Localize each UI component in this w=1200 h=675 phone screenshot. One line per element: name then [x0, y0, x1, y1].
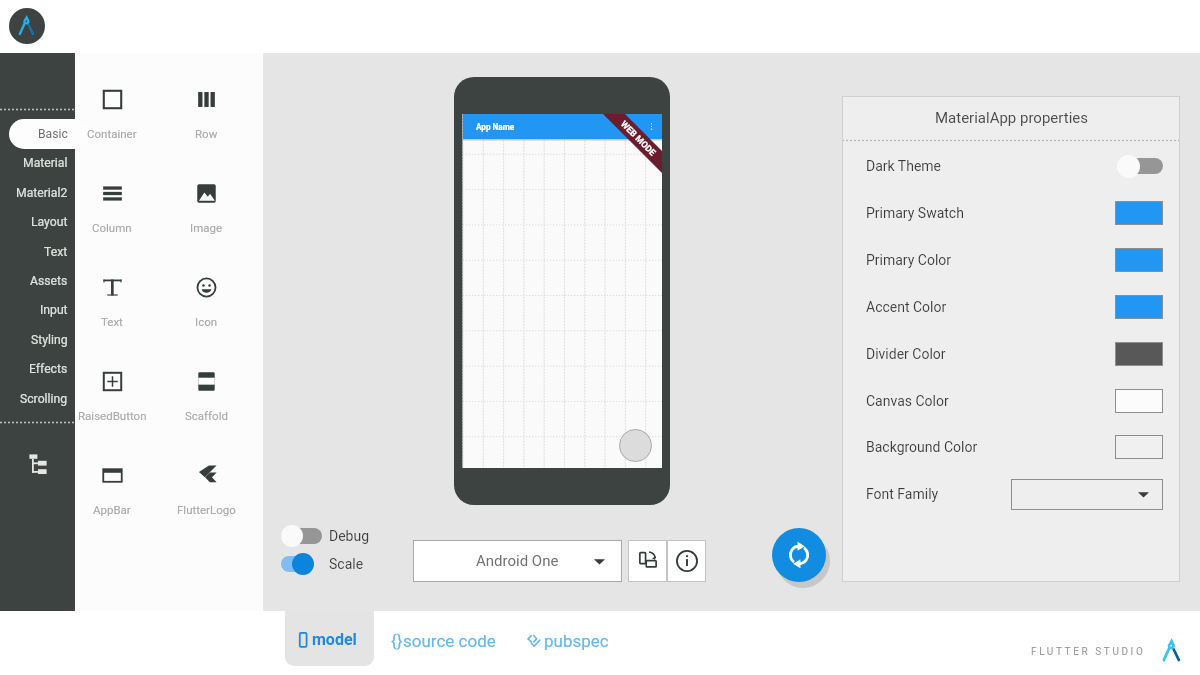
button[interactable]: pubspec	[527, 631, 609, 651]
button[interactable]	[9, 119, 89, 149]
button[interactable]: RaisedButton	[66, 357, 158, 419]
button[interactable]: Basic	[0, 121, 75, 147]
button[interactable]: {}	[391, 631, 496, 651]
staticText: Divider Color	[866, 346, 946, 362]
staticText: Image	[190, 221, 223, 234]
staticText: Scrolling	[20, 392, 68, 406]
staticText: Input	[40, 303, 68, 317]
staticText: FlutterLogo	[177, 503, 236, 516]
staticText: Text	[101, 315, 123, 328]
staticText: Primary Swatch	[866, 205, 964, 221]
button[interactable]: Dark Theme	[866, 144, 1163, 188]
button[interactable]: Background Color	[866, 425, 1163, 469]
staticText: Effects	[29, 362, 68, 376]
staticText: Row	[195, 127, 218, 140]
staticText: Debug	[329, 528, 370, 544]
staticText: Basic	[38, 127, 68, 141]
staticText: WEB MODE	[619, 119, 658, 158]
button[interactable]: Refresh preview	[772, 528, 826, 582]
staticText: Styling	[31, 333, 68, 347]
button[interactable]: Column	[66, 169, 158, 231]
staticText: Android One	[476, 552, 559, 570]
staticText: FLUTTER STUDIO	[1031, 646, 1146, 658]
staticText: Scaffold	[185, 409, 228, 422]
button[interactable]: Image	[160, 169, 252, 231]
staticText: Material	[23, 156, 68, 170]
button[interactable]: Widget tree	[20, 446, 55, 481]
staticText: pubspec	[544, 631, 609, 651]
button[interactable]: FlutterLogo	[160, 451, 252, 513]
button[interactable]: Rotate device	[628, 540, 667, 582]
staticText: Material2	[16, 186, 68, 200]
button[interactable]: Assets	[0, 268, 75, 294]
staticText: Accent Color	[866, 299, 947, 315]
staticText: Background Color	[866, 439, 978, 455]
staticText: Canvas Color	[866, 393, 949, 409]
button[interactable]: Container	[66, 75, 158, 137]
staticText: Text	[44, 245, 68, 259]
staticText: App Name	[476, 122, 515, 132]
button[interactable]: Flutter Studio home	[9, 8, 45, 44]
staticText: Font Family	[866, 486, 939, 502]
button[interactable]: Material2	[0, 180, 75, 206]
staticText: Column	[92, 221, 132, 234]
button[interactable]: Row	[160, 75, 252, 137]
button[interactable]: Android One	[413, 540, 622, 582]
staticText: Scale	[329, 556, 364, 572]
button[interactable]: Floating action button	[619, 429, 652, 462]
button[interactable]: Scaffold	[160, 357, 252, 419]
staticText: Layout	[31, 215, 68, 229]
button[interactable]: Effects	[0, 356, 75, 382]
button[interactable]: Layout	[0, 209, 75, 235]
button[interactable]: AppBar	[66, 451, 158, 513]
button[interactable]: Info	[667, 540, 706, 582]
button[interactable]: Input	[0, 297, 75, 323]
button[interactable]: Canvas Color	[866, 379, 1163, 423]
button[interactable]: Scrolling	[0, 386, 75, 412]
staticText: Icon	[195, 315, 218, 328]
staticText: {}	[391, 631, 403, 651]
staticText: AppBar	[93, 503, 131, 516]
button[interactable]: Icon	[160, 263, 252, 325]
button[interactable]: Text	[66, 263, 158, 325]
button[interactable]: Text	[0, 239, 75, 265]
button[interactable]: Debug	[281, 523, 370, 549]
staticText: RaisedButton	[78, 409, 147, 422]
button[interactable]: Scale	[281, 551, 364, 577]
staticText: Assets	[30, 274, 68, 288]
button[interactable]: Primary Color	[866, 238, 1163, 282]
staticText: Container	[87, 127, 137, 140]
button[interactable]: Font Family	[866, 472, 1163, 516]
button[interactable]: Accent Color	[866, 285, 1163, 329]
button[interactable]: Material	[0, 150, 75, 176]
button[interactable]: model	[285, 611, 374, 666]
button[interactable]: Styling	[0, 327, 75, 353]
staticText: source code	[403, 631, 496, 651]
button[interactable]: Divider Color	[866, 332, 1163, 376]
button[interactable]: Primary Swatch	[866, 191, 1163, 235]
staticText: Dark Theme	[866, 158, 942, 174]
staticText: Primary Color	[866, 252, 952, 268]
staticText: MaterialApp properties	[935, 109, 1088, 127]
staticText: model	[312, 630, 357, 649]
